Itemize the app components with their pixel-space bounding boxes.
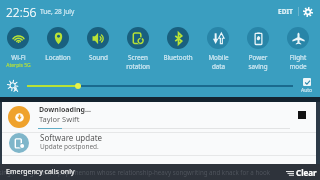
staticText: Downloading... [39,105,91,115]
staticText: Screen rotation [126,53,150,71]
button[interactable]: Settings [300,4,315,19]
staticText: Sound [89,53,108,62]
button[interactable]: Sound [78,23,118,62]
staticText: Auto [301,87,313,94]
staticText: Bluetooth [163,53,193,62]
staticText: Tue, 28 July [40,7,75,16]
button[interactable]: Downloading... [2,102,316,128]
staticText: Aterpis 5G [6,62,31,69]
button[interactable]: Screen rotation [118,23,158,71]
staticText: Power saving [248,53,268,71]
staticText: 22:56 [6,4,37,20]
button[interactable]: Auto brightness [7,80,20,93]
staticText: Update postponed. [40,142,99,151]
staticText: Location [45,53,71,62]
staticText: Flight mode [289,53,307,71]
staticText: Mobile data [208,53,229,71]
button[interactable]: EDIT [275,2,296,21]
staticText: EDIT [278,7,293,16]
staticText: Wi-Fi [11,53,26,62]
staticText: Clear [296,167,317,178]
button[interactable]: Auto [299,78,315,94]
button[interactable]: Location [38,23,78,62]
button[interactable] [27,80,293,92]
staticText: n American singer-songwriter, a pop phen… [0,168,271,176]
button[interactable]: Wi-Fi [0,23,38,69]
button[interactable]: Clear [283,165,320,180]
button[interactable]: Software update [2,131,316,153]
staticText: Taylor Swift [39,114,80,124]
button[interactable]: Mobile data [198,23,238,71]
button[interactable]: Flight mode [278,23,318,71]
button[interactable]: Power saving [238,23,278,71]
button[interactable]: Bluetooth [158,23,198,62]
staticText: Software update [40,132,103,143]
staticText: Emergency calls only [6,167,75,177]
